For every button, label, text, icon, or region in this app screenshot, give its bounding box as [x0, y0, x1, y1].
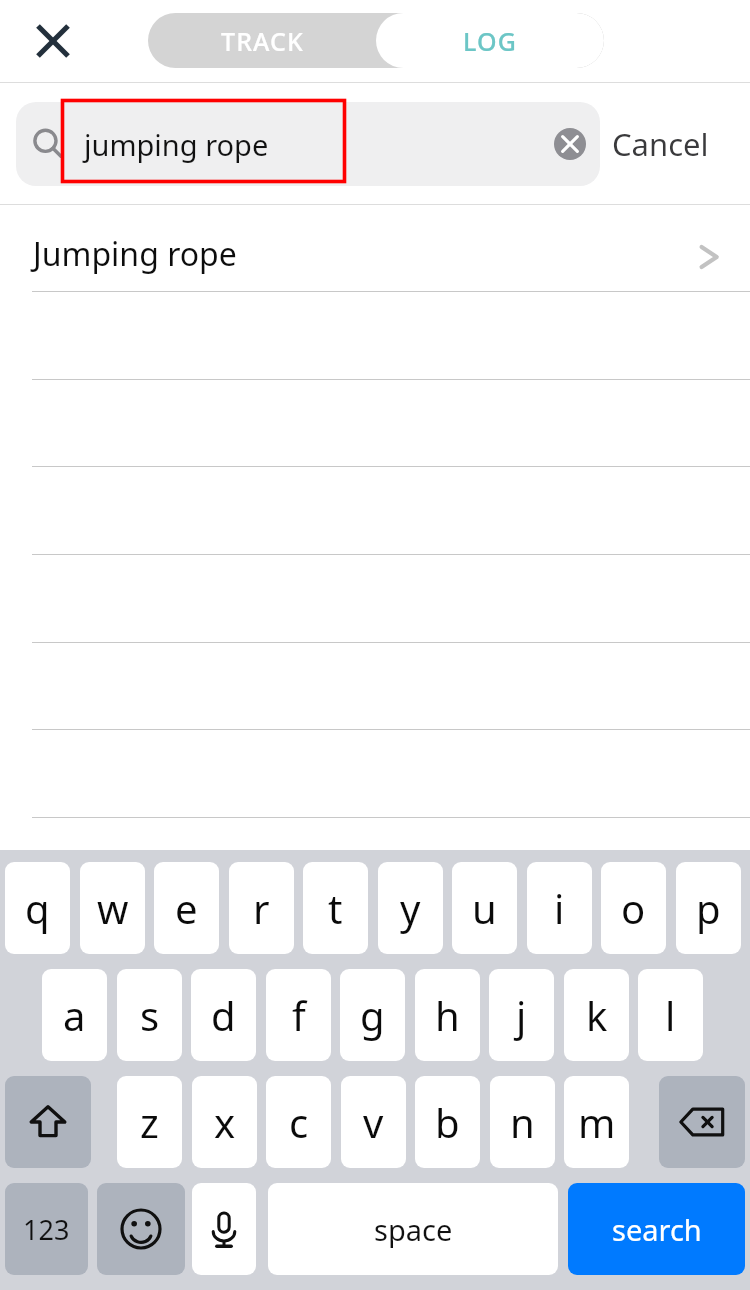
staticText: j [516, 988, 527, 1042]
button[interactable]: j [489, 969, 554, 1061]
button[interactable]: i [527, 862, 592, 954]
button[interactable]: v [341, 1076, 406, 1168]
button[interactable]: k [564, 969, 629, 1061]
button[interactable]: u [452, 862, 517, 954]
staticText: v [363, 1095, 384, 1149]
staticText: w [97, 881, 129, 935]
staticText: z [140, 1095, 159, 1149]
button[interactable]: g [340, 969, 405, 1061]
button[interactable]: t [303, 862, 368, 954]
button[interactable]: Jumping rope [0, 205, 750, 291]
staticText: Jumping rope [33, 232, 237, 276]
staticText: x [214, 1095, 236, 1149]
staticText: e [175, 881, 198, 935]
button[interactable]: 123 [5, 1183, 88, 1275]
button[interactable]: Dictation [192, 1183, 256, 1275]
staticText: g [360, 988, 385, 1042]
button[interactable]: f [266, 969, 331, 1061]
staticText: r [253, 881, 270, 935]
staticText: k [586, 988, 608, 1042]
button[interactable]: d [191, 969, 256, 1061]
button[interactable]: jumping rope [16, 102, 600, 186]
button[interactable]: Emoji [97, 1183, 185, 1275]
button[interactable]: Close [24, 12, 82, 70]
button[interactable]: z [117, 1076, 182, 1168]
button[interactable]: TRACK [148, 13, 376, 68]
button[interactable]: p [676, 862, 741, 954]
staticText: q [25, 881, 50, 935]
button[interactable]: y [378, 862, 443, 954]
staticText: a [63, 988, 86, 1042]
staticText: 123 [23, 1211, 70, 1248]
button[interactable]: q [5, 862, 70, 954]
button[interactable]: space [268, 1183, 558, 1275]
button[interactable]: n [490, 1076, 555, 1168]
staticText: i [554, 881, 565, 935]
staticText: h [435, 988, 460, 1042]
staticText: u [472, 881, 497, 935]
button[interactable]: a [42, 969, 107, 1061]
staticText: t [328, 881, 343, 935]
staticText: o [621, 881, 646, 935]
button[interactable]: c [266, 1076, 331, 1168]
staticText: f [292, 988, 306, 1042]
staticText: y [400, 881, 421, 935]
staticText: d [211, 988, 236, 1042]
staticText: jumping rope [84, 125, 269, 164]
button[interactable]: m [564, 1076, 629, 1168]
staticText: Cancel [612, 123, 709, 165]
button[interactable]: s [117, 969, 182, 1061]
staticText: search [612, 1210, 702, 1249]
staticText: c [289, 1095, 309, 1149]
button[interactable]: search [568, 1183, 745, 1275]
button[interactable]: Shift [5, 1076, 91, 1168]
button[interactable]: b [415, 1076, 480, 1168]
button[interactable]: o [601, 862, 666, 954]
button[interactable]: x [192, 1076, 257, 1168]
button[interactable]: Clear text [554, 128, 586, 160]
staticText: space [374, 1210, 453, 1249]
staticText: LOG [463, 24, 517, 58]
staticText: n [510, 1095, 535, 1149]
button[interactable]: h [415, 969, 480, 1061]
button[interactable]: e [154, 862, 219, 954]
staticText: b [435, 1095, 460, 1149]
button[interactable]: w [80, 862, 145, 954]
staticText: s [140, 988, 160, 1042]
button[interactable]: Backspace [659, 1076, 745, 1168]
button[interactable]: r [229, 862, 294, 954]
staticText: m [578, 1095, 616, 1149]
button[interactable]: Cancel [612, 102, 742, 186]
button[interactable]: LOG [376, 13, 604, 68]
staticText: TRACK [221, 24, 304, 58]
button[interactable]: l [638, 969, 703, 1061]
staticText: l [665, 988, 676, 1042]
staticText: p [696, 881, 721, 935]
